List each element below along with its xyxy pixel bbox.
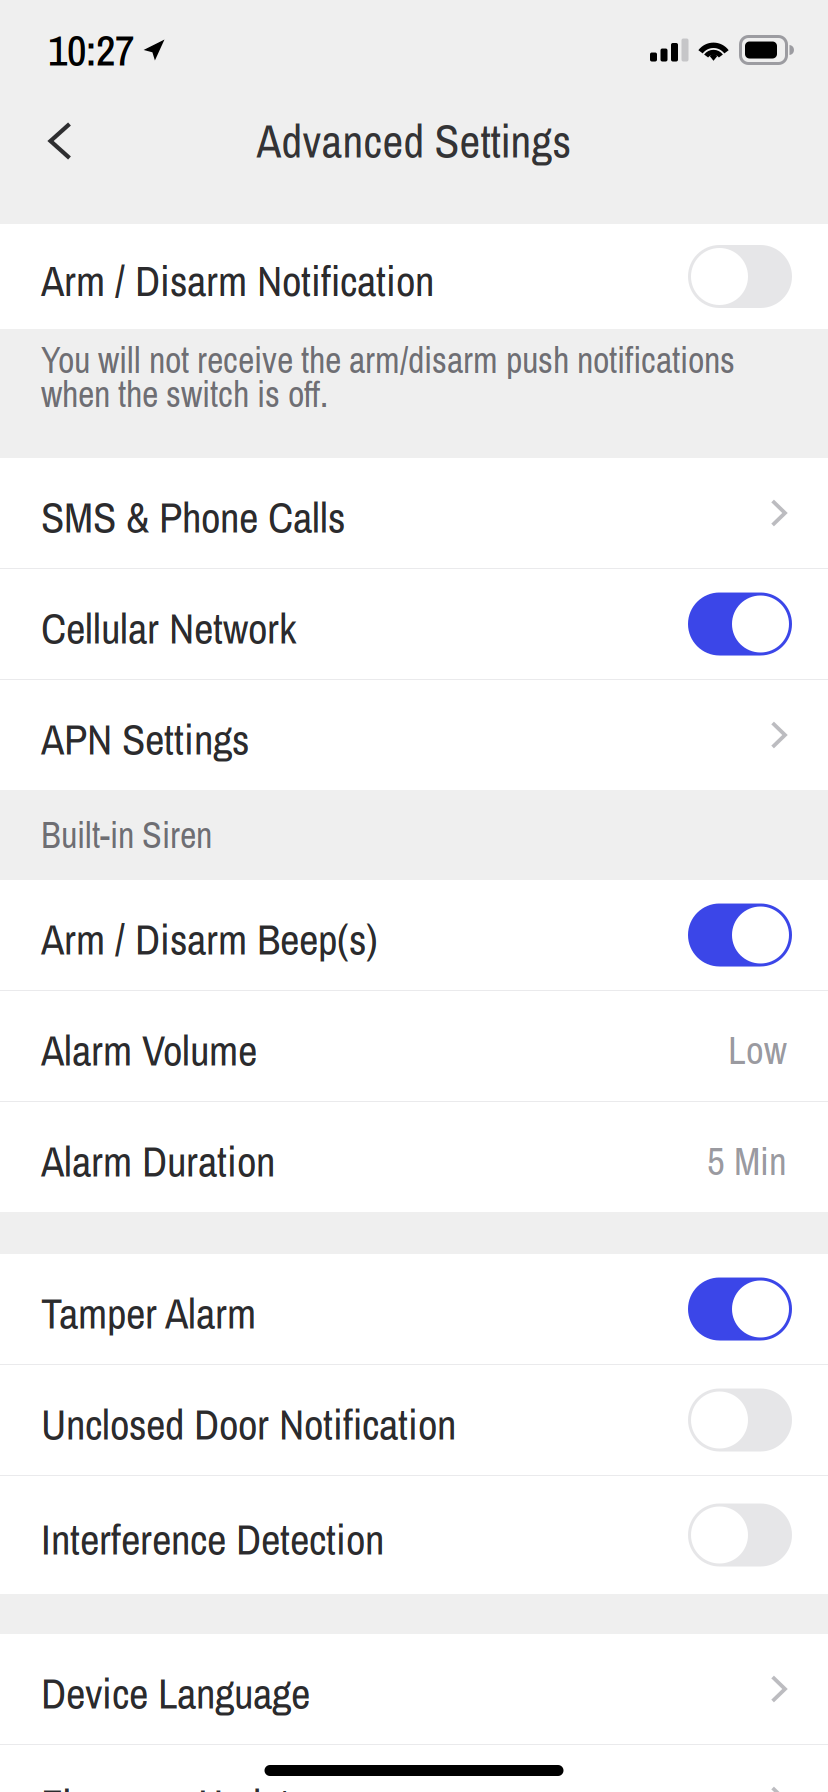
staticText: Low <box>728 1024 787 1076</box>
staticText: Alarm Volume <box>41 1021 257 1079</box>
button[interactable]: Device Language <box>0 1634 828 1744</box>
button[interactable]: Firmware Update <box>0 1745 828 1792</box>
staticText: Tamper Alarm <box>41 1284 256 1342</box>
staticText: 10:27 <box>48 21 134 79</box>
button[interactable]: Alarm Duration <box>0 1102 828 1212</box>
staticText: APN Settings <box>41 710 249 768</box>
staticText: Interference Detection <box>41 1510 384 1568</box>
staticText: Alarm Duration <box>41 1132 275 1190</box>
button[interactable]: Tamper Alarm <box>0 1254 828 1364</box>
staticText: Unclosed Door Notification <box>41 1395 456 1453</box>
button[interactable]: Arm / Disarm Notification <box>0 224 828 329</box>
button[interactable]: SMS & Phone Calls <box>0 458 828 568</box>
staticText: Firmware Update <box>41 1775 309 1792</box>
staticText: Cellular Network <box>41 599 296 657</box>
button[interactable]: Alarm Volume <box>0 991 828 1101</box>
staticText: SMS & Phone Calls <box>41 488 345 546</box>
staticText: Built-in Siren <box>41 811 212 859</box>
button[interactable]: Arm / Disarm Beep(s) <box>0 880 828 990</box>
staticText: You will not receive the arm/disarm push… <box>41 336 735 384</box>
button[interactable]: Back <box>10 86 110 196</box>
staticText: 5 Min <box>707 1135 787 1187</box>
staticText: Arm / Disarm Notification <box>41 252 434 309</box>
staticText: Advanced Settings <box>256 110 571 172</box>
staticText: Arm / Disarm Beep(s) <box>41 910 378 968</box>
button[interactable]: Unclosed Door Notification <box>0 1365 828 1475</box>
button[interactable]: Cellular Network <box>0 569 828 679</box>
staticText: when the switch is off. <box>41 370 328 418</box>
button[interactable]: Interference Detection <box>0 1476 828 1594</box>
button[interactable]: APN Settings <box>0 680 828 790</box>
staticText: Device Language <box>41 1664 310 1722</box>
